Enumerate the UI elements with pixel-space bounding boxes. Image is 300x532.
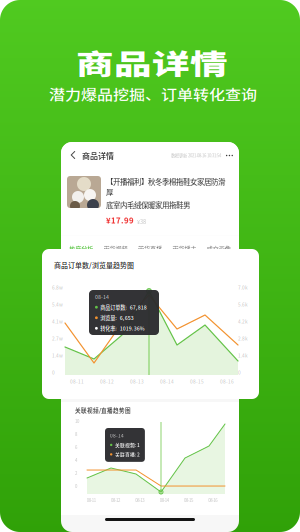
- button[interactable]: 带货直播: [133, 239, 167, 257]
- staticText: 数据更新 2021-08-16 10:31:54: [171, 152, 221, 159]
- staticText: 08-11: [87, 497, 96, 503]
- staticText: 4.1w: [52, 318, 63, 325]
- staticText: 商品订单数/浏览量趋势图: [54, 260, 134, 270]
- staticText: 6,653: [120, 314, 134, 321]
- staticText: 08-16: [208, 497, 217, 503]
- staticText: 浏览量:: [100, 314, 117, 321]
- staticText: 8: [75, 431, 77, 437]
- staticText: 08-14: [95, 293, 109, 300]
- staticText: 4: [75, 457, 77, 463]
- staticText: 底室内毛绒保暖家用拖鞋男: [106, 200, 190, 210]
- staticText: 6: [75, 444, 77, 450]
- staticText: 08-13: [130, 378, 144, 385]
- staticText: 2.8k: [238, 335, 248, 342]
- staticText: 08-16: [220, 378, 234, 385]
- staticText: 转化率:: [100, 324, 117, 332]
- staticText: 08-14: [160, 378, 174, 385]
- staticText: 1.4w: [52, 352, 63, 359]
- staticText: 商品详情: [82, 150, 114, 161]
- staticText: 08-15: [190, 378, 204, 385]
- staticText: 5.6k: [238, 301, 248, 308]
- staticText: 0: [52, 369, 55, 376]
- staticText: 商品订单数:: [100, 303, 127, 311]
- staticText: 热度分析: [69, 244, 93, 253]
- staticText: 4.2k: [238, 318, 248, 325]
- staticText: 08-12: [111, 497, 120, 503]
- button[interactable]: 更多: [221, 148, 239, 163]
- staticText: 08-14: [160, 497, 169, 503]
- staticText: 1.4k: [238, 352, 248, 359]
- staticText: ¥17.99: [106, 214, 134, 226]
- staticText: ¥38: [137, 217, 146, 226]
- staticText: 08-11: [70, 378, 84, 385]
- staticText: 【开播福利】秋冬季棉拖鞋女家居防滑厚: [106, 176, 225, 198]
- staticText: 08-14: [110, 432, 124, 439]
- staticText: 08-15: [184, 497, 193, 503]
- staticText: 商品详情: [76, 42, 228, 96]
- staticText: 5.4w: [52, 301, 63, 308]
- staticText: 10: [75, 418, 79, 424]
- staticText: 2: [75, 470, 77, 476]
- staticText: 0: [238, 369, 241, 376]
- staticText: 带货直播: [138, 244, 162, 253]
- button[interactable]: 带货播主: [167, 239, 202, 257]
- staticText: 08-13: [135, 497, 144, 503]
- staticText: 潜力爆品挖掘、订单转化查询: [49, 84, 257, 107]
- button[interactable]: 热度分析: [64, 239, 98, 257]
- staticText: 关联视频/直播趋势图: [75, 406, 131, 414]
- button[interactable]: 成交画像: [202, 239, 236, 257]
- button[interactable]: 带货视频: [98, 239, 133, 257]
- staticText: 7.0k: [238, 284, 248, 291]
- staticText: 67,818: [130, 303, 147, 311]
- staticText: 带货播主: [172, 244, 196, 253]
- staticText: 关联直播: 2: [115, 451, 140, 458]
- staticText: 08-12: [100, 378, 114, 385]
- staticText: 成交画像: [207, 244, 231, 253]
- staticText: 带货视频: [104, 244, 128, 253]
- staticText: 6.8w: [52, 284, 63, 291]
- staticText: 2.7w: [52, 335, 63, 342]
- staticText: 关联视频: 1: [115, 441, 140, 448]
- button[interactable]: 返回: [61, 146, 82, 164]
- staticText: 1019.36%: [120, 324, 145, 332]
- staticText: 0: [75, 483, 77, 489]
